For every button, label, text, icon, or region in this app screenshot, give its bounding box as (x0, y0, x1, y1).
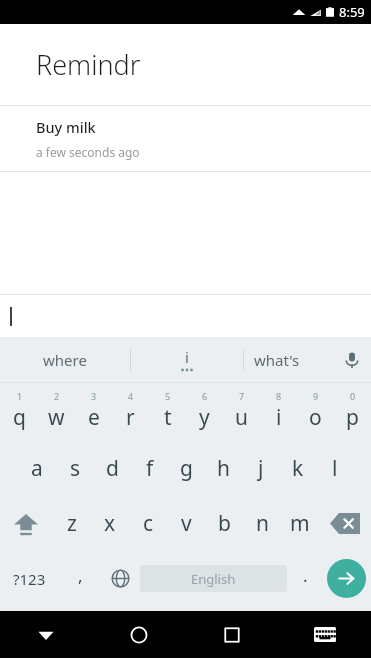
staticText: h (217, 454, 230, 483)
staticText: 3 (91, 390, 97, 402)
staticText: t (164, 403, 172, 432)
staticText: a few seconds ago (36, 144, 140, 160)
staticText: ?123 (13, 569, 46, 589)
staticText: 8:59 (339, 3, 365, 21)
staticText: 9 (313, 390, 319, 402)
staticText: 8 (276, 390, 282, 402)
button[interactable]: m (281, 496, 319, 551)
button[interactable]: Recent apps (185, 611, 278, 658)
button[interactable]: what's (244, 337, 333, 382)
button[interactable]: z (52, 496, 91, 551)
button[interactable]: x (91, 496, 129, 551)
button[interactable]: g (168, 441, 205, 496)
staticText: 6 (202, 390, 208, 402)
button[interactable]: Hide keyboard (0, 611, 92, 658)
button[interactable]: a (18, 441, 56, 496)
button[interactable]: Voice input (333, 337, 371, 382)
staticText: 7 (239, 390, 245, 402)
staticText: English (191, 570, 236, 588)
button[interactable]: b (205, 496, 243, 551)
button[interactable] (0, 295, 371, 337)
button[interactable]: i (131, 337, 243, 382)
button[interactable]: Buy milk (0, 106, 371, 171)
staticText: 0 (350, 390, 356, 402)
button[interactable]: j (242, 441, 279, 496)
staticText: e (88, 403, 100, 432)
staticText: what's (254, 350, 300, 370)
button[interactable]: v (167, 496, 205, 551)
staticText: n (256, 509, 269, 538)
button[interactable]: 2 (38, 386, 75, 441)
button[interactable]: 0 (334, 386, 371, 441)
button[interactable]: Backspace (319, 496, 371, 551)
staticText: x (104, 509, 116, 538)
staticText: y (199, 403, 210, 432)
staticText: f (146, 454, 154, 483)
staticText: o (309, 403, 322, 432)
button[interactable]: Enter (327, 559, 366, 598)
staticText: , (78, 564, 83, 587)
button[interactable]: 7 (223, 386, 260, 441)
button[interactable]: 5 (149, 386, 186, 441)
staticText: Remindr (36, 46, 141, 83)
staticText: r (126, 403, 135, 432)
staticText: c (143, 509, 154, 538)
button[interactable]: 8 (260, 386, 297, 441)
button[interactable]: Change language (102, 551, 138, 606)
staticText: s (70, 454, 81, 483)
staticText: v (181, 509, 192, 538)
staticText: i (276, 403, 282, 432)
button[interactable]: 1 (0, 386, 38, 441)
staticText: d (106, 454, 119, 483)
button[interactable]: k (279, 441, 316, 496)
button[interactable]: . (289, 551, 321, 606)
staticText: p (346, 403, 359, 432)
staticText: a (31, 454, 43, 483)
staticText: w (48, 403, 65, 432)
staticText: i (185, 347, 189, 367)
staticText: k (292, 454, 304, 483)
button[interactable]: Switch keyboard (278, 611, 371, 658)
staticText: m (290, 509, 310, 538)
button[interactable]: h (205, 441, 242, 496)
staticText: l (332, 454, 338, 483)
button[interactable]: c (129, 496, 167, 551)
staticText: 5 (165, 390, 171, 402)
staticText: q (13, 403, 26, 432)
staticText: j (258, 454, 264, 483)
button[interactable]: ?123 (0, 551, 58, 606)
button[interactable]: l (316, 441, 353, 496)
button[interactable]: Home (92, 611, 185, 658)
staticText: b (218, 509, 231, 538)
button[interactable]: 9 (297, 386, 334, 441)
button[interactable]: Shift (0, 496, 52, 551)
button[interactable]: f (131, 441, 168, 496)
staticText: 2 (54, 390, 60, 402)
staticText: . (303, 564, 308, 587)
button[interactable]: English (140, 565, 287, 592)
staticText: u (235, 403, 248, 432)
button[interactable]: d (94, 441, 131, 496)
button[interactable]: , (58, 551, 102, 606)
staticText: Buy milk (36, 117, 96, 137)
button[interactable]: where (0, 337, 130, 382)
button[interactable]: 3 (75, 386, 112, 441)
staticText: where (43, 350, 87, 370)
button[interactable]: 4 (112, 386, 149, 441)
staticText: g (180, 454, 193, 483)
staticText: z (67, 509, 77, 538)
button[interactable]: s (56, 441, 94, 496)
button[interactable]: n (243, 496, 281, 551)
button[interactable]: 6 (186, 386, 223, 441)
staticText: 1 (17, 390, 23, 402)
staticText: 4 (128, 390, 134, 402)
